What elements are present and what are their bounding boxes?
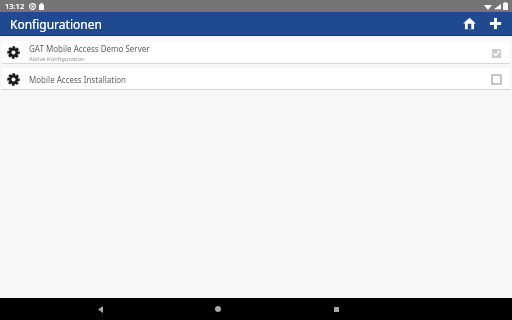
button[interactable]: Active configuration, selected: [487, 44, 505, 62]
staticText: Mobile Access Installation: [29, 74, 126, 85]
staticText: 13:12: [5, 1, 25, 11]
button[interactable]: Back: [83, 298, 117, 320]
button[interactable]: Recent apps: [319, 298, 353, 320]
staticText: Aktive Konfiguration: [29, 55, 85, 63]
staticText: GAT Mobile Access Demo Server: [29, 43, 150, 54]
button[interactable]: Mobile Access Installation: [2, 68, 510, 90]
button[interactable]: Select configuration: [487, 70, 505, 88]
button[interactable]: Add configuration: [483, 12, 507, 35]
button[interactable]: Home: [457, 12, 481, 35]
staticText: Konfigurationen: [10, 16, 102, 32]
button[interactable]: GAT Mobile Access Demo Server: [2, 41, 510, 64]
button[interactable]: Home: [201, 298, 235, 320]
